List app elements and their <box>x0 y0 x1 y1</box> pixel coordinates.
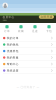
staticText: 足迹 <box>32 30 38 33</box>
staticText: 帮助中心 <box>7 62 19 66</box>
staticText: 我的钱包 <box>7 43 19 46</box>
staticText: — 已经到底了 — <box>16 85 39 89</box>
staticText: 优惠券包 <box>7 49 19 53</box>
staticText: 我的订单 <box>7 36 19 40</box>
staticText: 我的客服 <box>7 56 19 59</box>
button[interactable]: Profile photo <box>0 0 8 8</box>
staticText: 系统设置 <box>7 69 19 72</box>
button[interactable]: 足迹 <box>28 23 42 35</box>
button[interactable]: 订单 <box>0 23 14 35</box>
button[interactable]: 我的订单 <box>0 35 56 41</box>
button[interactable]: 立即开通 <box>39 15 54 19</box>
staticText: 卡包 <box>46 30 52 33</box>
button[interactable]: 我的客服 <box>0 54 56 61</box>
staticText: 订单 <box>4 30 10 33</box>
button[interactable]: 帮助中心 <box>0 61 56 67</box>
button[interactable]: 系统设置 <box>0 67 56 74</box>
button[interactable]: 我的钱包 <box>0 41 56 48</box>
staticText: 立即开通 <box>40 15 52 19</box>
button[interactable]: 收藏 <box>14 23 28 35</box>
staticText: 专享权益 <box>2 19 6 21</box>
staticText: 会员中心 <box>2 15 14 19</box>
button[interactable]: 优惠券包 <box>0 48 56 54</box>
staticText: 收藏 <box>18 30 24 33</box>
button[interactable]: 卡包 <box>42 23 56 35</box>
